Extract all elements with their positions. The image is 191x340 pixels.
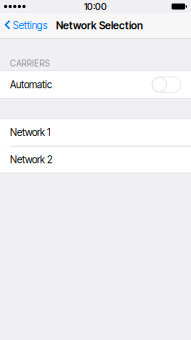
button[interactable]: Automatic	[0, 71, 191, 98]
staticText: CARRIERS	[10, 58, 50, 69]
button[interactable]: Settings	[0, 15, 48, 35]
button[interactable]: Network 1	[0, 119, 191, 146]
staticText: Network 2	[10, 154, 53, 166]
button[interactable]: Network 2	[0, 147, 191, 173]
staticText: Settings	[13, 19, 48, 31]
staticText: Network 1	[10, 126, 51, 138]
staticText: Automatic	[10, 79, 52, 91]
staticText: Network Selection	[56, 19, 143, 32]
staticText: 10:00	[84, 1, 107, 12]
